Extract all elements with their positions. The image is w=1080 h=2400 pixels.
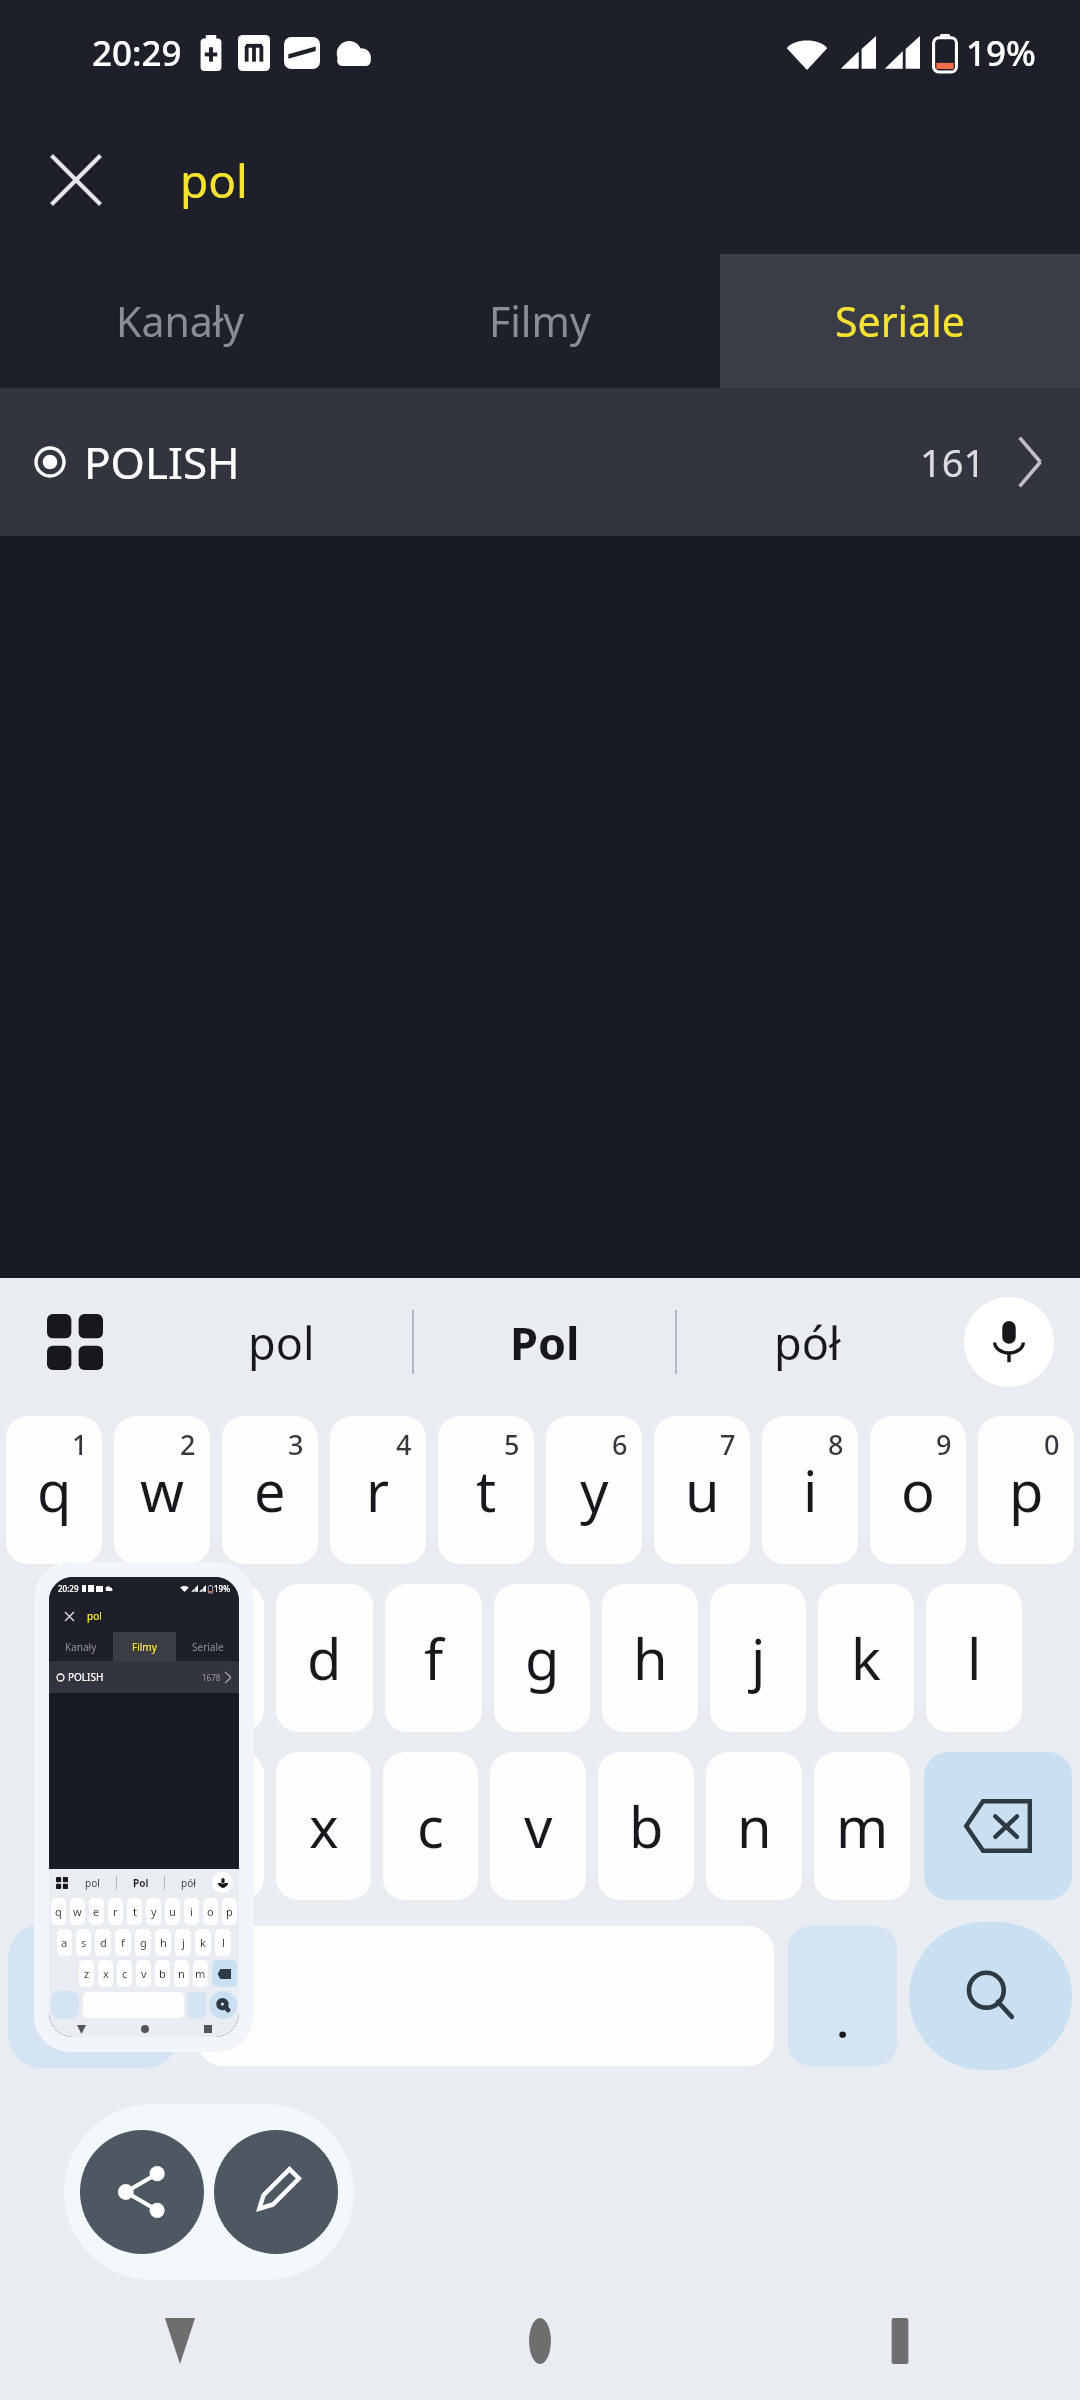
staticText: u — [169, 1904, 176, 1919]
button[interactable]: y — [546, 1416, 642, 1564]
staticText: POLISH — [68, 1670, 104, 1684]
button[interactable]: . — [788, 1926, 897, 2066]
staticText: s — [202, 1620, 229, 1696]
staticText: c — [122, 1966, 128, 1981]
button[interactable]: f — [385, 1584, 482, 1732]
button[interactable]: i — [762, 1416, 858, 1564]
staticText: 20:29 — [58, 1583, 79, 1594]
button[interactable]: u — [654, 1416, 750, 1564]
button[interactable]: Share — [80, 2130, 204, 2254]
staticText: f — [121, 1935, 125, 1950]
staticText: g — [140, 1935, 147, 1950]
button[interactable]: Backspace — [924, 1752, 1072, 1900]
staticText: e — [254, 1452, 286, 1528]
staticText: 161 — [920, 436, 986, 488]
button[interactable]: Search — [909, 1922, 1072, 2070]
button[interactable]: Pol — [414, 1278, 675, 1406]
staticText: l — [222, 1935, 225, 1950]
button[interactable]: o — [870, 1416, 966, 1564]
staticText: h — [633, 1620, 668, 1696]
button[interactable]: Filmy — [360, 254, 720, 388]
staticText: pol — [87, 1609, 102, 1623]
button[interactable]: e — [222, 1416, 318, 1564]
staticText: pol — [85, 1876, 100, 1890]
staticText: y — [580, 1452, 609, 1528]
button[interactable]: Edit — [214, 2130, 338, 2254]
staticText: d — [100, 1935, 107, 1950]
staticText: k — [851, 1620, 881, 1696]
button[interactable]: j — [710, 1584, 806, 1732]
button[interactable]: Keyboard modes — [0, 1278, 150, 1406]
staticText: e — [93, 1904, 100, 1919]
button[interactable]: Home — [360, 2282, 720, 2400]
button[interactable]: c — [383, 1752, 478, 1900]
button[interactable]: a — [58, 1584, 155, 1732]
staticText: r — [113, 1904, 118, 1919]
button[interactable]: Clear search — [26, 130, 126, 230]
staticText: 3 — [288, 1426, 304, 1463]
staticText: Seriale — [835, 293, 965, 349]
button[interactable]: POLISH — [0, 388, 1080, 536]
staticText: a — [91, 1620, 123, 1696]
button[interactable]: x — [276, 1752, 371, 1900]
staticText: z — [84, 1966, 90, 1981]
button[interactable]: Space — [197, 1926, 774, 2066]
staticText: 19% — [214, 1583, 230, 1594]
button[interactable]: k — [818, 1584, 914, 1732]
staticText: 5 — [504, 1426, 520, 1463]
staticText: j — [182, 1935, 185, 1950]
staticText: Pol — [133, 1876, 149, 1890]
staticText: r — [366, 1452, 390, 1528]
staticText: Filmy — [132, 1640, 157, 1654]
button[interactable]: d — [276, 1584, 373, 1732]
staticText: Kanały — [116, 293, 245, 349]
staticText: c — [417, 1788, 444, 1864]
button[interactable]: w — [114, 1416, 210, 1564]
staticText: m — [836, 1788, 889, 1864]
button[interactable]: Kanały — [0, 254, 360, 388]
staticText: g — [525, 1620, 560, 1696]
staticText: pol — [248, 1312, 315, 1373]
staticText: 19% — [966, 29, 1036, 77]
staticText: v — [141, 1966, 147, 1981]
button[interactable]: Recents — [720, 2282, 1080, 2400]
button[interactable]: b — [598, 1752, 694, 1900]
staticText: f — [424, 1620, 444, 1696]
staticText: 9 — [936, 1426, 952, 1463]
button[interactable]: s — [167, 1584, 264, 1732]
staticText: pół — [181, 1876, 196, 1890]
button[interactable]: l — [926, 1584, 1022, 1732]
button[interactable]: pol — [180, 149, 248, 212]
button[interactable]: z — [169, 1752, 264, 1900]
staticText: d — [307, 1620, 342, 1696]
button[interactable]: m — [814, 1752, 910, 1900]
staticText: 7 — [720, 1426, 736, 1463]
staticText: 1 — [72, 1426, 88, 1463]
staticText: . — [837, 1995, 849, 2049]
staticText: o — [901, 1452, 935, 1528]
button[interactable]: Voice input — [938, 1278, 1080, 1406]
staticText: w — [73, 1904, 82, 1919]
button[interactable]: t — [438, 1416, 534, 1564]
button[interactable]: r — [330, 1416, 426, 1564]
button[interactable]: pół — [677, 1278, 938, 1406]
staticText: n — [178, 1966, 185, 1981]
button[interactable]: Screenshot preview — [34, 1562, 254, 2052]
button[interactable]: h — [602, 1584, 698, 1732]
button[interactable]: Back — [0, 2282, 360, 2400]
staticText: i — [190, 1904, 193, 1919]
staticText: w — [140, 1452, 185, 1528]
button[interactable]: Emoji and symbols — [8, 1924, 179, 2068]
button[interactable]: q — [6, 1416, 102, 1564]
button[interactable]: pol — [150, 1278, 412, 1406]
button[interactable]: p — [978, 1416, 1074, 1564]
button[interactable]: n — [706, 1752, 802, 1900]
staticText: v — [524, 1788, 553, 1864]
staticText: y — [151, 1904, 157, 1919]
button[interactable]: Seriale — [720, 254, 1080, 388]
staticText: Kanały — [65, 1640, 97, 1654]
button[interactable]: g — [494, 1584, 590, 1732]
staticText: 2 — [180, 1426, 196, 1463]
staticText: 1678 — [202, 1672, 221, 1683]
button[interactable]: v — [490, 1752, 586, 1900]
